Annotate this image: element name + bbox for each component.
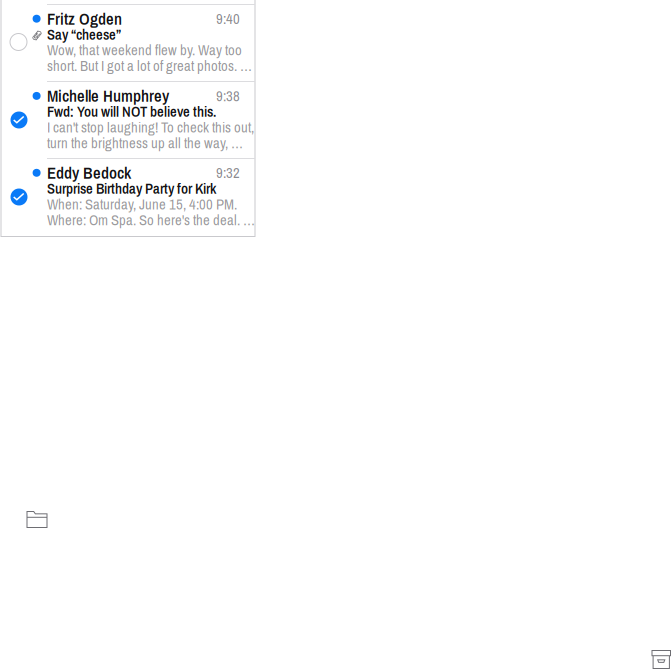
staticText: I can't stop laughing! To check this out… (47, 117, 254, 137)
staticText: Fritz Ogden (47, 7, 122, 30)
staticText: When: Saturday, June 15, 4:00 PM. (47, 194, 237, 214)
button[interactable]: Archive (651, 650, 671, 669)
button[interactable]: Select message (6, 30, 30, 54)
staticText: Where: Om Spa. So here's the deal. … (47, 210, 255, 230)
staticText: Eddy Bedock (47, 161, 131, 184)
button[interactable]: Fritz Ogden (2, 5, 254, 82)
button[interactable]: Eddy Bedock (2, 159, 254, 236)
button[interactable]: Michelle Humphrey (2, 82, 254, 159)
button[interactable]: Move to folder (26, 511, 47, 528)
staticText: Surprise Birthday Party for Kirk (47, 179, 216, 198)
staticText: 9:32 (216, 163, 240, 183)
staticText: 9:38 (216, 86, 240, 106)
staticText: Fwd: You will NOT believe this. (47, 102, 216, 121)
button[interactable]: Deselect message (7, 185, 31, 209)
staticText: 9:40 (216, 9, 240, 29)
staticText: Say “cheese” (47, 24, 121, 44)
staticText: short. But I got a lot of great photos. … (47, 56, 252, 76)
button[interactable]: Deselect message (7, 108, 31, 132)
staticText: Wow, that weekend flew by. Way too (47, 40, 242, 60)
staticText: turn the brightness up all the way, … (47, 133, 243, 153)
staticText: Michelle Humphrey (47, 85, 169, 107)
